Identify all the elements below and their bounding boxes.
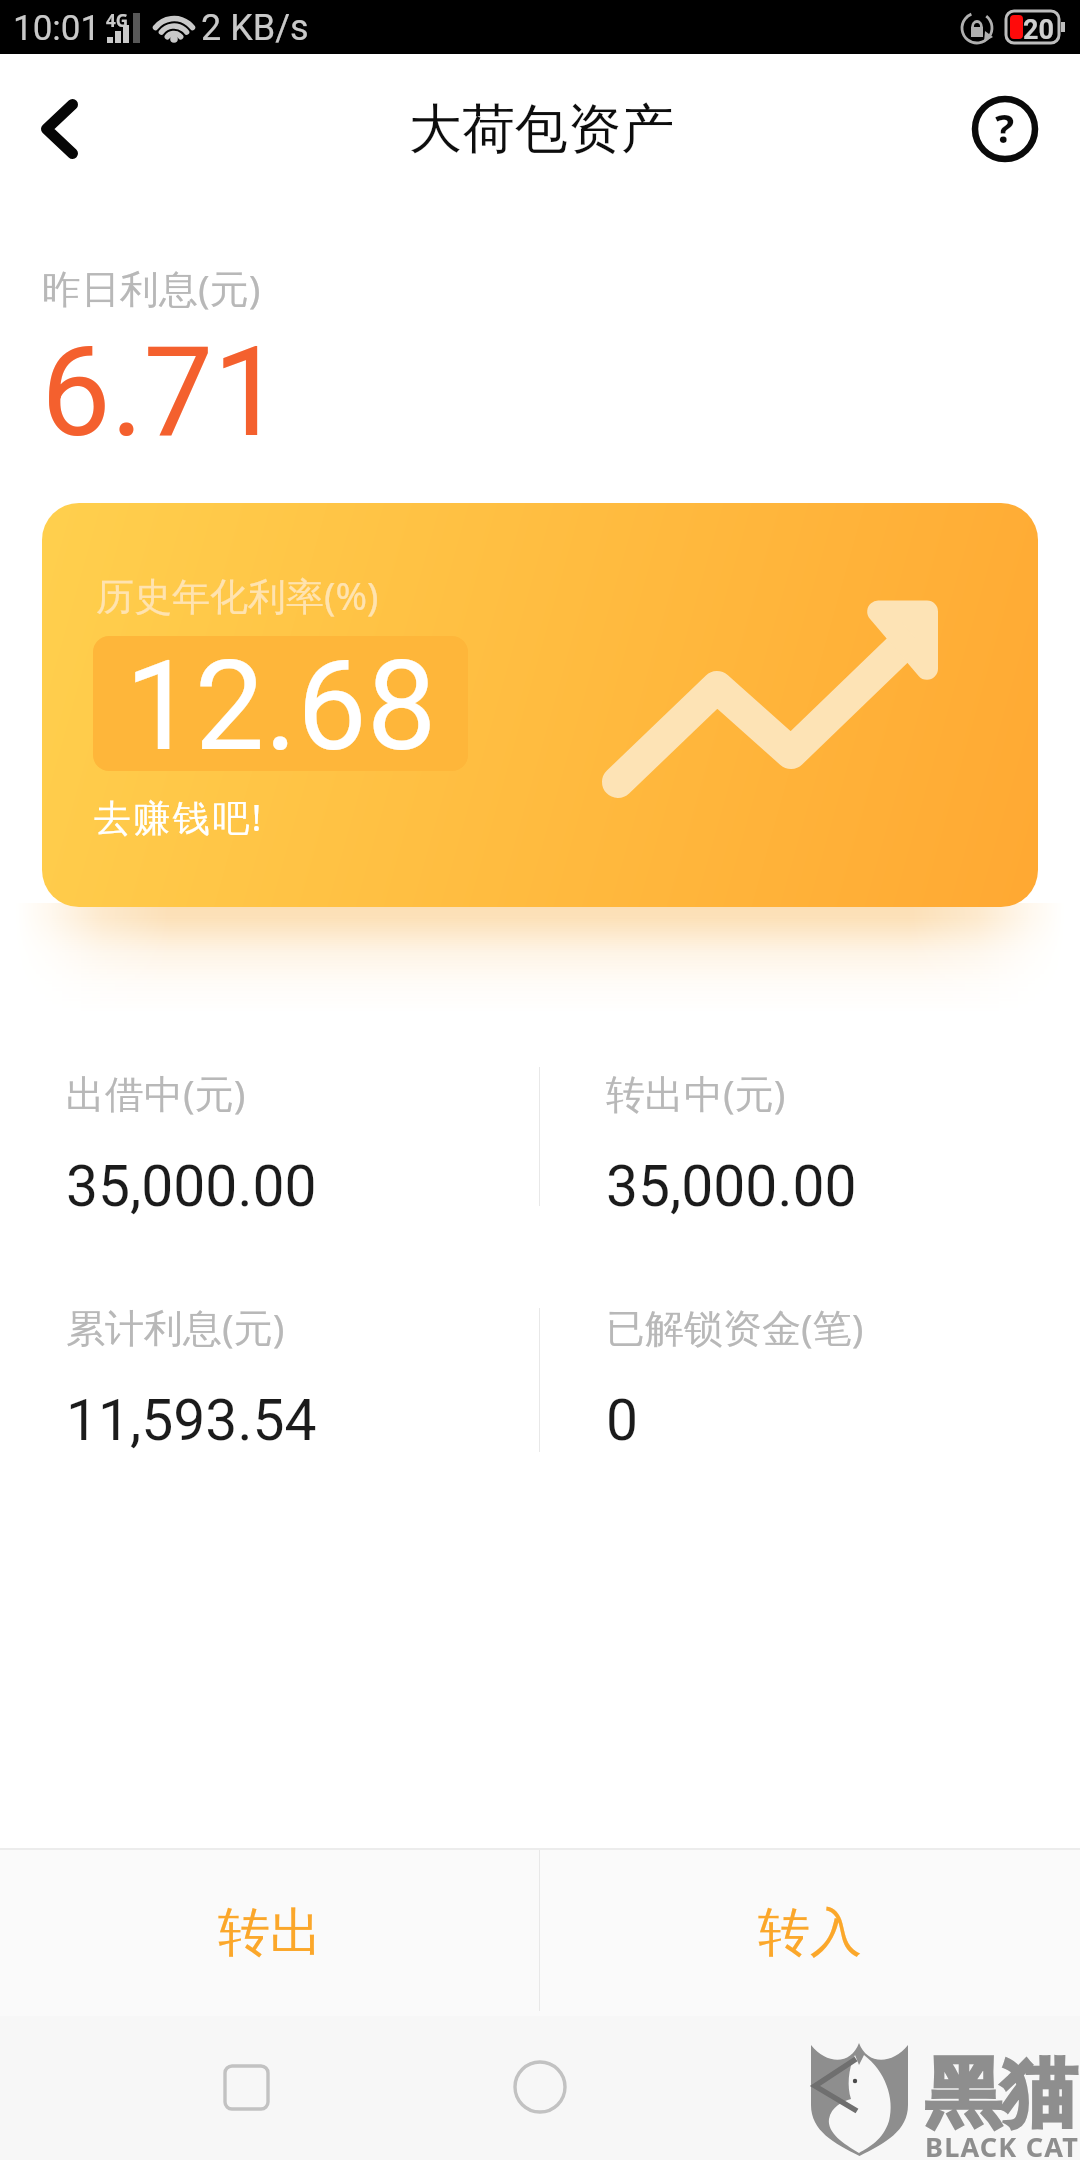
staticText: 黑猫: [925, 2046, 1077, 2142]
staticText: 去赚钱吧!: [94, 791, 264, 842]
staticText: 35,000.00: [606, 1153, 857, 1220]
button[interactable]: 历史年化利率(%): [42, 503, 1038, 907]
staticText: 累计利息(元): [66, 1300, 285, 1353]
staticText: 昨日利息(元): [42, 261, 261, 314]
staticText: 大荷包资产: [409, 96, 674, 163]
staticText: 已解锁资金(笔): [606, 1300, 864, 1353]
staticText: BLACK CAT: [925, 2128, 1079, 2160]
button[interactable]: Help: [945, 54, 1065, 204]
staticText: 6.71: [41, 320, 283, 465]
staticText: ?: [995, 100, 1015, 154]
staticText: 出借中(元): [66, 1066, 246, 1119]
staticText: 2 KB/s: [201, 7, 309, 49]
button[interactable]: 转出: [0, 1850, 540, 2016]
button[interactable]: Back: [0, 54, 118, 204]
staticText: 转出: [218, 1900, 322, 1966]
button[interactable]: Recents: [191, 2032, 301, 2142]
staticText: 10:01: [13, 8, 101, 49]
staticText: 历史年化利率(%): [96, 569, 379, 621]
staticText: 0: [606, 1387, 639, 1454]
staticText: 4G: [106, 9, 129, 32]
button[interactable]: Home: [485, 2032, 595, 2142]
staticText: 转出中(元): [606, 1066, 786, 1119]
staticText: 12.68: [125, 636, 437, 769]
staticText: 20: [1023, 14, 1054, 46]
staticText: 11,593.54: [66, 1387, 317, 1454]
staticText: 35,000.00: [66, 1153, 317, 1220]
button[interactable]: 转入: [540, 1850, 1080, 2016]
staticText: 转入: [758, 1900, 862, 1966]
